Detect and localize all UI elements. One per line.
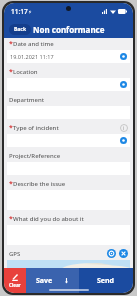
staticText: 19.01.2021 11:17: [10, 53, 54, 60]
staticText: Project/Reference: [9, 152, 61, 160]
button[interactable]: Save: [26, 268, 79, 293]
button[interactable]: Pick value: [7, 134, 130, 147]
staticText: *: [9, 179, 13, 189]
staticText: Non conformance: [33, 24, 105, 35]
button[interactable]: Clear location: [119, 249, 128, 258]
button[interactable]: Send: [79, 268, 133, 293]
staticText: GPS: [9, 250, 21, 258]
staticText: Send: [97, 276, 115, 286]
button[interactable]: 19.01.2021 11:17: [7, 50, 130, 63]
button[interactable]: Pick value: [120, 137, 127, 144]
button[interactable]: Locate: [107, 249, 116, 258]
staticText: Clear: [9, 282, 21, 288]
staticText: 11:17: [11, 7, 28, 16]
staticText: Location: [13, 68, 38, 76]
staticText: *: [9, 214, 13, 224]
button[interactable]: Info: [120, 124, 128, 132]
staticText: Type of incident: [13, 124, 59, 132]
staticText: Back: [14, 26, 27, 33]
staticText: Describe the issue: [13, 180, 66, 188]
staticText: *: [9, 39, 13, 49]
button[interactable]: Back: [9, 24, 31, 35]
button[interactable]: Pick value: [120, 53, 127, 60]
button[interactable]: Clear: [4, 268, 26, 293]
button[interactable]: Pick value: [7, 78, 130, 91]
staticText: Save: [36, 276, 53, 286]
staticText: What did you do about it: [13, 215, 84, 223]
staticText: *: [9, 123, 13, 133]
staticText: i: [123, 125, 125, 132]
staticText: *: [9, 67, 13, 77]
button[interactable]: Pick value: [120, 81, 127, 88]
staticText: Date and time: [13, 40, 54, 48]
staticText: Department: [9, 96, 45, 104]
